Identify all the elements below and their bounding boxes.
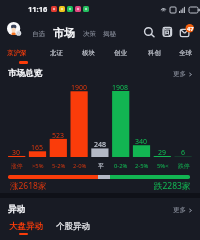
staticText: 1900	[71, 83, 88, 91]
staticText: 京沪深	[7, 49, 27, 57]
staticText: 248	[94, 140, 107, 148]
staticText: 问	[163, 27, 172, 38]
button[interactable]: 板块	[73, 49, 103, 61]
button[interactable]: 自选	[32, 30, 45, 38]
staticText: 47	[187, 25, 194, 33]
button[interactable]: 全球	[170, 49, 200, 61]
staticText: 大盘异动	[9, 221, 43, 232]
button[interactable]: 科创	[139, 49, 169, 61]
button[interactable]: 2-0%	[69, 162, 90, 171]
button[interactable]: 5%<	[152, 162, 173, 171]
staticText: 涨2618家	[10, 180, 47, 192]
button[interactable]: 市场	[53, 26, 75, 40]
staticText: 11:16	[28, 4, 48, 14]
staticText: 1908	[112, 83, 129, 91]
staticText: 创业	[114, 49, 127, 57]
staticText: 340	[135, 137, 148, 145]
staticText: 板块	[82, 49, 95, 57]
staticText: 30	[12, 148, 21, 156]
staticText: 0-2%	[114, 162, 128, 170]
button[interactable]: 5-2%	[48, 162, 69, 171]
button[interactable]: 京沪深	[2, 49, 32, 61]
staticText: 5-2%	[52, 162, 66, 170]
staticText: 北证	[50, 49, 63, 57]
staticText: 个股异动	[56, 221, 90, 232]
staticText: 跌2283家	[154, 180, 191, 192]
staticText: 2-5%	[135, 162, 149, 170]
button[interactable]: 平	[90, 162, 111, 171]
staticText: 2-0%	[73, 162, 87, 170]
staticText: 更多	[173, 206, 186, 214]
staticText: 165	[31, 143, 44, 151]
staticText: 科创	[148, 49, 161, 57]
staticText: 决策	[83, 30, 96, 38]
button[interactable]: 更多	[173, 70, 193, 78]
button[interactable]: Ask	[161, 25, 173, 37]
staticText: 涨停	[11, 162, 23, 169]
staticText: 5%<	[157, 162, 169, 170]
staticText: 自选	[32, 30, 45, 38]
button[interactable]: Profile	[5, 20, 23, 38]
staticText: 平	[98, 162, 104, 169]
button[interactable]: 2-5%	[131, 162, 152, 171]
staticText: 29	[158, 148, 167, 156]
button[interactable]: 跌停	[173, 162, 194, 171]
button[interactable]: >5%	[27, 162, 48, 171]
staticText: 揭秘	[103, 30, 116, 38]
staticText: >5%	[32, 162, 44, 170]
button[interactable]: 北证	[41, 49, 71, 61]
button[interactable]: 涨停	[6, 162, 27, 171]
button[interactable]: Search	[142, 23, 156, 37]
button[interactable]: 揭秘	[103, 30, 116, 38]
button[interactable]: 0-2%	[110, 162, 131, 171]
button[interactable]: 大盘异动	[9, 221, 43, 232]
staticText: 523	[52, 131, 65, 139]
button[interactable]: 更多	[173, 206, 193, 214]
button[interactable]: 个股异动	[56, 221, 90, 232]
button[interactable]: 决策	[83, 30, 96, 38]
staticText: 6	[181, 148, 186, 156]
staticText: 更多	[173, 70, 186, 78]
staticText: 全球	[179, 49, 192, 57]
staticText: 市场	[53, 26, 75, 40]
staticText: 异动	[8, 204, 25, 215]
button[interactable]: 创业	[105, 49, 135, 61]
button[interactable]: Messages	[178, 22, 196, 40]
staticText: 市场总览	[8, 68, 42, 79]
staticText: 跌停	[178, 162, 190, 169]
